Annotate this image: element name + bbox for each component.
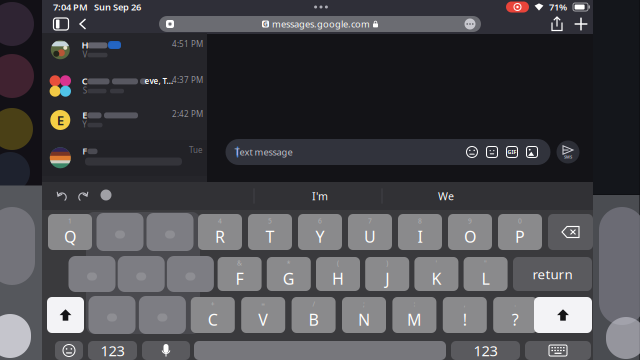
button[interactable]: GIF xyxy=(505,145,518,158)
staticText: ? xyxy=(512,309,519,330)
staticText: L xyxy=(482,268,490,289)
button[interactable]: Send SMS xyxy=(556,140,579,163)
staticText: 6 xyxy=(318,217,322,225)
staticText: Y xyxy=(315,226,324,247)
button[interactable]: D xyxy=(168,257,212,291)
button[interactable]: Dictate xyxy=(142,341,190,360)
staticText: I xyxy=(417,226,422,247)
button[interactable]: E xyxy=(148,214,192,250)
button[interactable]: Gallery xyxy=(525,145,538,158)
staticText: / xyxy=(313,300,315,308)
button[interactable]: L xyxy=(464,257,508,291)
button[interactable]: 123 xyxy=(88,341,137,360)
staticText: ) xyxy=(386,259,388,267)
staticText: 123 xyxy=(100,341,124,360)
button[interactable]: K xyxy=(414,257,458,291)
button[interactable]: 123 xyxy=(451,341,520,360)
staticText: I'm xyxy=(312,189,328,203)
staticText: J xyxy=(385,268,389,289)
staticText: G xyxy=(263,20,268,28)
staticText: messages.google.com xyxy=(272,18,370,30)
staticText: K xyxy=(431,268,441,289)
button[interactable]: Y xyxy=(298,214,342,250)
button[interactable]: Hide Keyboard xyxy=(525,341,591,360)
staticText: ( xyxy=(337,259,339,267)
button[interactable]: Share xyxy=(547,14,567,34)
button[interactable]: I xyxy=(398,214,442,250)
button[interactable]: F xyxy=(42,140,207,176)
button[interactable]: return xyxy=(513,257,592,291)
staticText: V xyxy=(258,309,268,330)
button[interactable]: Sidebar xyxy=(49,13,73,35)
staticText: 1 xyxy=(68,217,72,225)
staticText: R xyxy=(215,226,225,247)
button[interactable]: F xyxy=(218,257,262,291)
staticText: We xyxy=(438,189,454,203)
button[interactable]: W xyxy=(98,214,142,250)
staticText: 9 xyxy=(468,217,472,225)
staticText: M xyxy=(407,309,422,330)
staticText: 2:42 PM xyxy=(172,109,203,119)
staticText: return xyxy=(532,265,572,283)
button[interactable]: N xyxy=(342,297,386,333)
button[interactable]: O xyxy=(448,214,492,250)
button[interactable]: Delete xyxy=(548,214,593,250)
button[interactable]: Emoji keyboard xyxy=(55,341,83,360)
button[interactable]: B xyxy=(292,297,336,333)
button[interactable]: Q xyxy=(48,214,92,250)
staticText: : xyxy=(413,300,415,308)
button[interactable]: ? xyxy=(493,297,537,333)
staticText: 8 xyxy=(418,217,422,225)
staticText: + xyxy=(211,300,215,308)
staticText: 7:04 PM xyxy=(53,1,88,13)
staticText: 123 xyxy=(473,341,497,360)
button[interactable]: C xyxy=(42,69,207,104)
staticText: " xyxy=(484,259,487,267)
button[interactable]: I'm xyxy=(270,185,370,207)
staticText: P xyxy=(515,226,525,247)
button[interactable]: J xyxy=(365,257,409,291)
button[interactable]: P xyxy=(498,214,542,250)
button[interactable]: E xyxy=(42,103,207,140)
button[interactable]: A xyxy=(70,257,114,291)
staticText: ' xyxy=(435,259,437,267)
staticText: S xyxy=(83,85,87,96)
button[interactable]: C xyxy=(191,297,235,333)
button[interactable]: M xyxy=(392,297,436,333)
button[interactable]: G xyxy=(159,16,481,32)
button[interactable]: Shift xyxy=(534,297,592,333)
button[interactable]: H xyxy=(42,33,207,69)
staticText: V xyxy=(82,49,87,60)
staticText: , xyxy=(464,300,466,308)
button[interactable]: G xyxy=(267,257,311,291)
button[interactable]: R xyxy=(198,214,242,250)
button[interactable]: Space xyxy=(194,341,446,360)
staticText: * xyxy=(287,259,291,267)
staticText: 0 xyxy=(518,217,522,225)
button[interactable]: Undo xyxy=(55,189,69,203)
staticText: 4:37 PM xyxy=(172,75,203,85)
button[interactable]: Redo xyxy=(76,189,90,203)
button[interactable]: Stickers xyxy=(485,145,498,158)
staticText: G xyxy=(283,268,295,289)
button[interactable]: S xyxy=(119,257,163,291)
button[interactable]: T xyxy=(248,214,292,250)
staticText: Y xyxy=(82,119,87,130)
staticText: 71% xyxy=(549,1,567,13)
button[interactable]: X xyxy=(140,297,184,333)
staticText: T xyxy=(265,226,274,247)
button[interactable]: V xyxy=(241,297,285,333)
staticText: E xyxy=(82,109,87,121)
staticText: Tue xyxy=(189,145,203,155)
button[interactable]: Back xyxy=(74,15,92,33)
button[interactable]: Emoji xyxy=(465,145,478,158)
staticText: 7 xyxy=(368,217,372,225)
button[interactable]: ! xyxy=(443,297,487,333)
button[interactable]: H xyxy=(316,257,360,291)
button[interactable]: We xyxy=(396,185,496,207)
button[interactable]: New Tab xyxy=(571,14,591,34)
button[interactable]: Z xyxy=(90,297,134,333)
staticText: = xyxy=(261,300,265,308)
button[interactable]: Shift xyxy=(47,297,84,333)
button[interactable]: U xyxy=(348,214,392,250)
